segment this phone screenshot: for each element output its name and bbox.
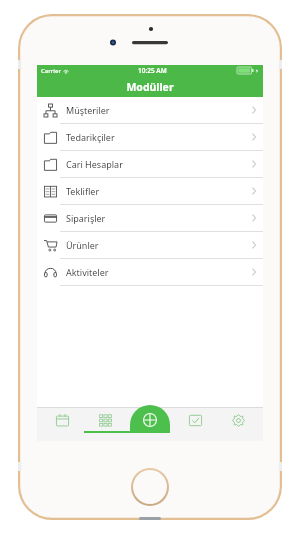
staticText: 10:25 AM: [138, 66, 167, 75]
button[interactable]: Teklifler: [37, 178, 263, 205]
button[interactable]: Tedarikçiler: [37, 124, 263, 151]
staticText: Siparişler: [66, 212, 106, 224]
button[interactable]: Cari Hesaplar: [37, 151, 263, 178]
button[interactable]: Tasks: [177, 407, 213, 441]
button[interactable]: Müşteriler: [37, 97, 263, 124]
button[interactable]: Add: [130, 405, 170, 433]
button[interactable]: Calendar: [44, 407, 80, 441]
button[interactable]: Keypad: [87, 407, 123, 441]
staticText: Teklifler: [66, 185, 100, 197]
button[interactable]: Home: [131, 468, 169, 506]
staticText: Carrier: [41, 67, 61, 75]
staticText: Cari Hesaplar: [66, 158, 123, 170]
button[interactable]: Aktiviteler: [37, 259, 263, 286]
staticText: Aktiviteler: [66, 266, 109, 278]
button[interactable]: Settings: [220, 407, 256, 441]
button[interactable]: Ürünler: [37, 232, 263, 259]
staticText: Müşteriler: [66, 104, 110, 116]
button[interactable]: Siparişler: [37, 205, 263, 232]
staticText: Modüller: [126, 80, 174, 94]
staticText: Ürünler: [66, 239, 99, 251]
staticText: Tedarikçiler: [66, 131, 115, 143]
